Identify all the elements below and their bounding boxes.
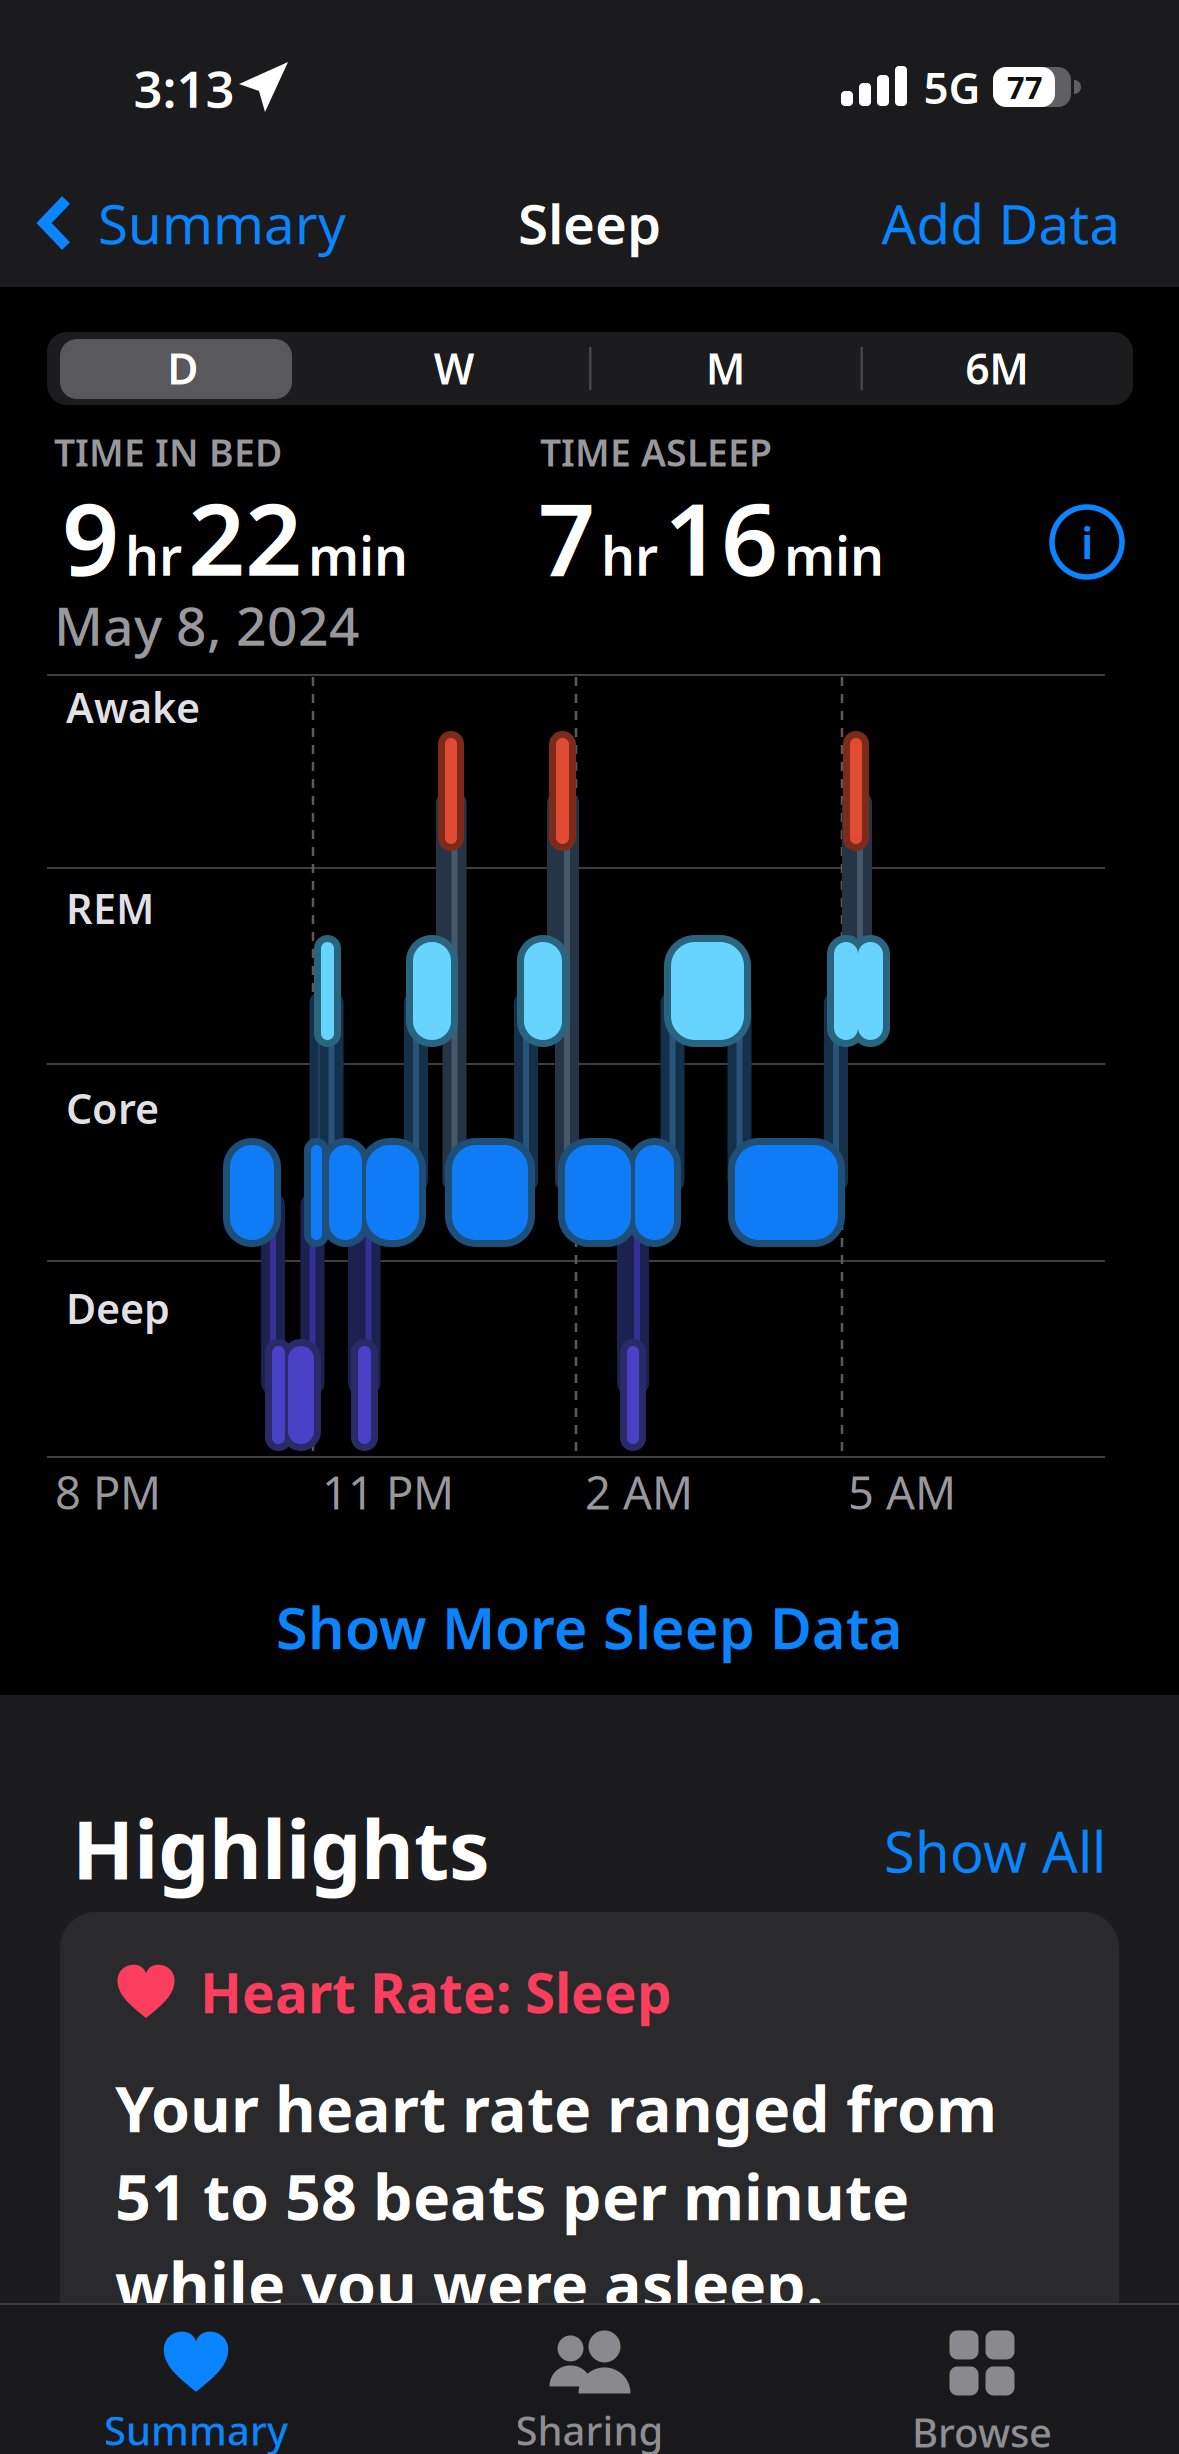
staticText: Deep: [66, 1281, 170, 1335]
staticText: Highlights: [72, 1794, 490, 1902]
staticText: Show All: [884, 1814, 1106, 1888]
staticText: 16: [664, 471, 778, 603]
staticText: 2 AM: [585, 1462, 693, 1522]
button[interactable]: W: [318, 331, 590, 404]
staticText: D: [167, 340, 198, 396]
staticText: Summary: [104, 2403, 288, 2454]
button[interactable]: i: [1050, 505, 1124, 579]
staticText: W: [434, 340, 475, 396]
staticText: TIME ASLEEP: [540, 427, 772, 477]
button[interactable]: Show All: [884, 1814, 1106, 1888]
staticText: 7: [538, 471, 595, 603]
staticText: 8 PM: [55, 1462, 161, 1522]
staticText: hr: [601, 520, 658, 590]
button[interactable]: Summary: [26, 2321, 366, 2454]
staticText: 51 to 58 beats per minute: [115, 2154, 909, 2238]
staticText: 6M: [965, 340, 1029, 396]
staticText: Show More Sleep Data: [276, 1589, 903, 1665]
staticText: Heart Rate: Sleep: [200, 1956, 672, 2028]
button[interactable]: Show More Sleep Data: [276, 1589, 903, 1665]
staticText: Browse: [912, 2405, 1052, 2454]
staticText: 77: [1007, 67, 1043, 107]
staticText: hr: [125, 520, 182, 590]
staticText: Summary: [98, 187, 346, 259]
staticText: 5 AM: [848, 1462, 956, 1522]
button[interactable]: M: [590, 331, 861, 404]
staticText: Sharing: [515, 2403, 663, 2454]
staticText: M: [706, 340, 746, 396]
button[interactable]: D: [47, 331, 318, 404]
button[interactable]: Summary: [38, 187, 346, 259]
staticText: 11 PM: [322, 1462, 454, 1522]
staticText: Core: [66, 1081, 159, 1135]
staticText: 3:13: [133, 54, 234, 122]
staticText: 9: [62, 471, 119, 603]
button[interactable]: 6M: [861, 331, 1133, 404]
button[interactable]: Heart Rate: Sleep: [60, 1912, 1119, 2454]
staticText: Your heart rate ranged from: [115, 2066, 997, 2150]
button[interactable]: Sharing: [419, 2321, 759, 2454]
staticText: 5G: [923, 58, 980, 116]
staticText: REM: [66, 881, 154, 935]
staticText: i: [1081, 513, 1093, 571]
staticText: TIME IN BED: [54, 427, 282, 477]
staticText: Sleep: [518, 187, 661, 259]
staticText: min: [308, 520, 408, 590]
staticText: Awake: [66, 680, 200, 734]
staticText: 22: [188, 471, 302, 603]
button[interactable]: Browse: [812, 2321, 1152, 2454]
staticText: while you were asleep.: [115, 2242, 824, 2326]
staticText: Add Data: [881, 187, 1120, 259]
button[interactable]: Add Data: [881, 187, 1120, 259]
staticText: min: [784, 520, 884, 590]
staticText: May 8, 2024: [54, 590, 360, 660]
